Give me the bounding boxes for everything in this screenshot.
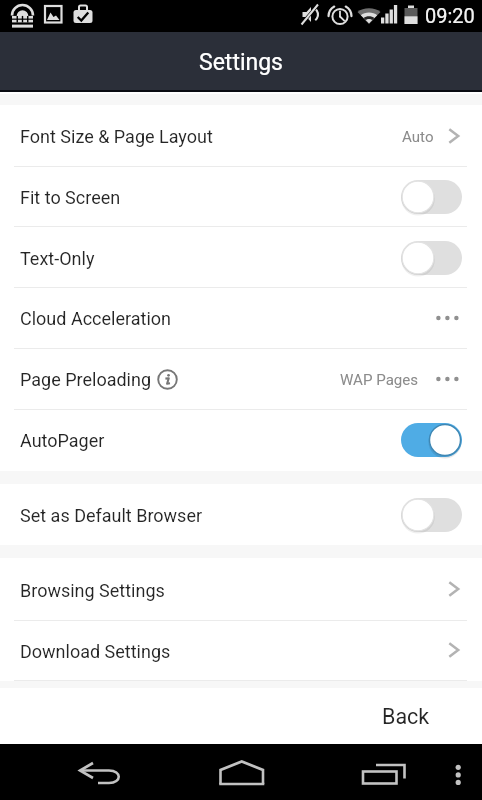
button[interactable]: Cloud Acceleration [0,287,482,348]
button[interactable]: Font Size & Page Layout [0,105,482,166]
button[interactable]: Text-Only [0,227,482,288]
staticText: Cloud Acceleration [20,308,171,329]
button[interactable]: AutoPager [0,409,482,470]
staticText: Download Settings [20,641,171,662]
button[interactable]: More options [440,744,480,800]
button[interactable]: Switch on [401,423,462,457]
staticText: AutoPager [20,430,105,451]
button[interactable]: Home [198,744,286,800]
staticText: WAP Pages [340,371,419,389]
button[interactable]: Switch off [401,180,462,214]
staticText: 09:20 [425,4,475,27]
button[interactable]: Fit to Screen [0,166,482,227]
button[interactable]: Back [0,690,482,741]
button[interactable]: Switch off [401,241,462,275]
staticText: Set as Default Browser [20,505,203,526]
staticText: Font Size & Page Layout [20,126,213,147]
button[interactable]: Download Settings [0,620,482,680]
staticText: Auto [402,128,434,146]
button[interactable]: Page Preloading [0,348,482,409]
button[interactable]: Switch off [401,498,462,532]
staticText: Browsing Settings [20,580,165,601]
button[interactable]: Set as Default Browser [0,484,482,545]
staticText: Settings [199,49,283,76]
staticText: Page Preloading [20,369,152,390]
staticText: Text-Only [20,248,95,269]
button[interactable]: Browsing Settings [0,558,482,620]
staticText: Back [382,704,430,729]
button[interactable]: Back [56,744,144,800]
staticText: Fit to Screen [20,187,121,208]
button[interactable]: Recent apps [340,744,428,800]
